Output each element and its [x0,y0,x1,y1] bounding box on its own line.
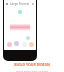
staticText: lorem ipsum dolor sit amet [16,69,48,72]
button[interactable]: More [31,2,35,6]
staticText: Large Format [10,2,29,6]
staticText: BUILD YOUR DESIGN [14,62,50,67]
button[interactable]: Back [5,2,9,6]
